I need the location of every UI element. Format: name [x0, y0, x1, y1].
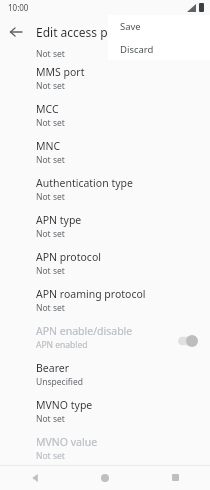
button[interactable]: Discard	[108, 38, 210, 60]
button[interactable]: Bearer	[0, 361, 210, 398]
button[interactable]: Back	[6, 22, 26, 42]
button[interactable]: APN enable/disable	[0, 324, 210, 361]
staticText: Not set	[36, 117, 65, 129]
staticText: Not set	[36, 450, 65, 462]
staticText: MVNO value	[36, 435, 98, 449]
button[interactable]: MVNO type	[0, 398, 210, 435]
button[interactable]: Not set	[0, 48, 210, 59]
staticText: Edit access point	[36, 24, 130, 40]
button[interactable]: MNC	[0, 139, 210, 176]
staticText: Not set	[36, 228, 65, 240]
staticText: APN enable/disable	[36, 324, 133, 338]
staticText: MMS port	[36, 65, 85, 79]
staticText: MVNO type	[36, 398, 93, 412]
staticText: MNC	[36, 139, 61, 153]
button[interactable]: MVNO value	[0, 435, 210, 465]
staticText: APN roaming protocol	[36, 287, 146, 301]
button[interactable]: APN type	[0, 213, 210, 250]
staticText: Discard	[120, 43, 154, 56]
button[interactable]: Authentication type	[0, 176, 210, 213]
button[interactable]: MMS port	[0, 65, 210, 102]
staticText: APN type	[36, 213, 82, 227]
button[interactable]: APN protocol	[0, 250, 210, 287]
button[interactable]: MCC	[0, 102, 210, 139]
staticText: Not set	[36, 191, 65, 203]
staticText: Not set	[36, 265, 65, 277]
staticText: MCC	[36, 102, 59, 116]
button[interactable]: Recent apps	[140, 465, 210, 490]
button[interactable]: Save	[108, 15, 210, 38]
staticText: Save	[120, 20, 141, 33]
staticText: Not set	[36, 48, 65, 59]
staticText: Not set	[36, 154, 65, 166]
staticText: Not set	[36, 80, 65, 92]
button[interactable]: APN roaming protocol	[0, 287, 210, 324]
button[interactable]: Back	[0, 465, 70, 490]
staticText: Authentication type	[36, 176, 133, 190]
staticText: APN enabled	[36, 339, 88, 351]
staticText: 10:00	[8, 2, 29, 13]
staticText: Not set	[36, 413, 65, 425]
button[interactable]: Home	[70, 465, 140, 490]
staticText: Not set	[36, 302, 65, 314]
staticText: APN protocol	[36, 250, 101, 264]
staticText: Unspecified	[36, 376, 83, 388]
staticText: Bearer	[36, 361, 70, 375]
